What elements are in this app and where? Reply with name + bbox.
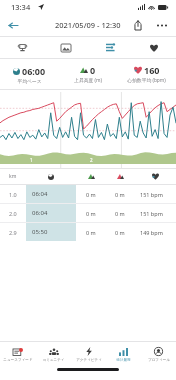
button[interactable]: Share xyxy=(130,17,146,33)
staticText: 06:04 xyxy=(32,190,48,198)
button[interactable]: 0 xyxy=(58,59,117,89)
staticText: 平均ペース xyxy=(17,78,42,84)
staticText: 統計履歴 xyxy=(116,358,131,363)
staticText: 0 m xyxy=(86,229,96,236)
staticText: 151 bpm xyxy=(140,210,163,217)
button[interactable]: プロフィール xyxy=(141,342,176,368)
staticText: km xyxy=(9,173,17,180)
staticText: 1.0 xyxy=(9,191,17,198)
staticText: プロフィール xyxy=(148,358,170,363)
button[interactable]: 06:00 xyxy=(0,59,58,89)
staticText: 2.0 xyxy=(9,210,17,217)
button[interactable]: More options xyxy=(154,17,170,33)
staticText: 0 m xyxy=(115,210,125,217)
button[interactable]: Trophy xyxy=(0,37,44,58)
staticText: 0 m xyxy=(115,191,125,198)
staticText: 0 m xyxy=(115,229,125,236)
button[interactable]: 160 xyxy=(117,59,176,89)
staticText: 06:04 xyxy=(32,209,48,217)
staticText: 0 m xyxy=(86,191,96,198)
staticText: コミュニティ xyxy=(42,358,65,363)
button[interactable]: 統計履歴 xyxy=(106,342,141,368)
staticText: 151 bpm xyxy=(140,191,163,198)
button[interactable]: アクティビティ xyxy=(71,342,106,368)
staticText: 2.9 xyxy=(9,229,17,236)
button[interactable]: 2.0 xyxy=(0,204,176,222)
staticText: 149 bpm xyxy=(140,229,163,236)
staticText: 2 xyxy=(90,157,93,163)
staticText: アクティビティ xyxy=(76,358,102,363)
button[interactable]: Back xyxy=(4,16,22,34)
staticText: 1 xyxy=(30,157,33,163)
staticText: 上昇高度 (m) xyxy=(74,77,102,84)
button[interactable]: 1.0 xyxy=(0,185,176,203)
staticText: 0 m xyxy=(86,210,96,217)
staticText: 13:34 xyxy=(11,2,31,12)
staticText: 心拍数平均 (bpm) xyxy=(127,77,166,84)
button[interactable]: ニュースフィード xyxy=(0,342,36,368)
staticText: 160 xyxy=(144,64,160,76)
button[interactable]: 2.9 xyxy=(0,223,176,241)
staticText: 05:50 xyxy=(32,228,48,236)
button[interactable]: コミュニティ xyxy=(36,342,71,368)
button[interactable]: Heart rate xyxy=(132,37,176,58)
staticText: ニュースフィード xyxy=(3,358,33,363)
staticText: 06:00 xyxy=(22,65,46,77)
staticText: 0 xyxy=(90,64,96,76)
button[interactable]: Splits xyxy=(88,37,132,58)
button[interactable]: Photo xyxy=(44,37,88,58)
staticText: 2021/05/09 - 12:30 xyxy=(55,20,121,30)
